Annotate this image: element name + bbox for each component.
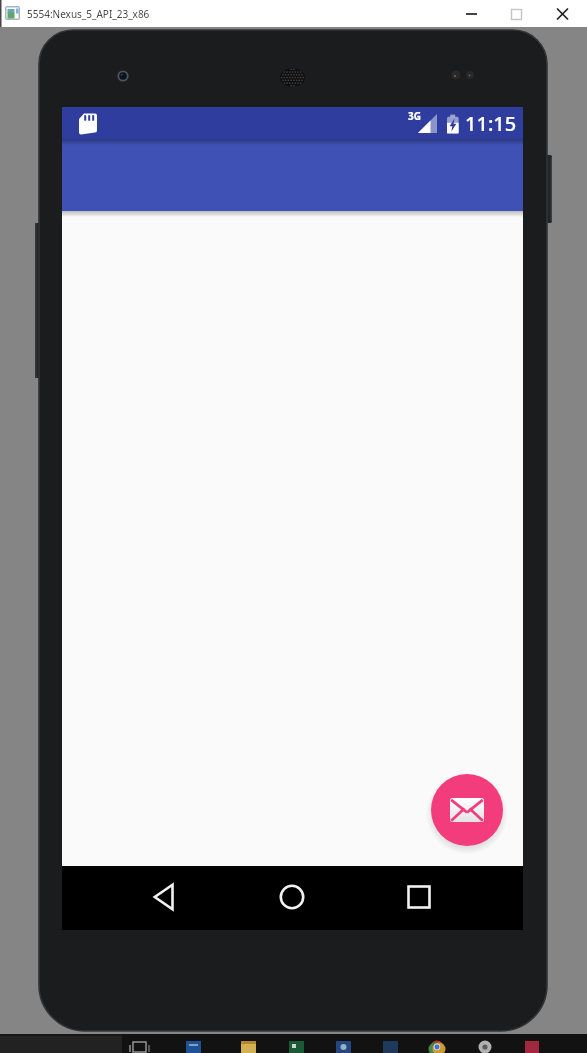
staticText: 11:15 [465,110,517,137]
staticText: 5554:Nexus_5_API_23_x86 [27,7,150,21]
staticText: 3G [408,109,421,123]
